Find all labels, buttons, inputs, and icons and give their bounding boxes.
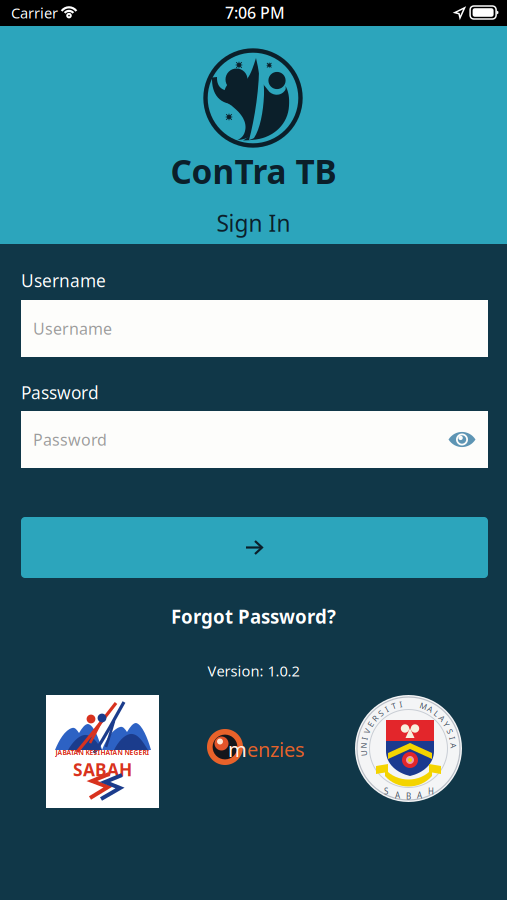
staticText: Password (21, 381, 99, 404)
staticText: Username (21, 269, 106, 292)
button[interactable]: Show password (440, 423, 484, 456)
staticText: 7:06 PM (225, 2, 285, 23)
staticText: A (395, 790, 400, 801)
staticText: Password (33, 429, 107, 450)
staticText: menzies (228, 736, 305, 763)
staticText: B (406, 791, 411, 802)
staticText: Sign In (216, 208, 290, 238)
button[interactable]: Sign In (21, 517, 488, 578)
staticText: A (417, 790, 422, 801)
button[interactable]: Forgot Password? (171, 604, 336, 629)
staticText: Version: 1.0.2 (207, 661, 299, 680)
staticText: SABAH (73, 758, 132, 781)
staticText: JABATAN KESIHATAN NEGERI (55, 748, 149, 757)
staticText: Forgot Password? (171, 604, 336, 629)
staticText: Carrier (11, 3, 58, 22)
staticText: ConTra TB (170, 149, 336, 193)
staticText: m (228, 736, 247, 763)
staticText: H (428, 786, 434, 797)
staticText: S (384, 786, 388, 797)
staticText: Username (33, 318, 112, 339)
